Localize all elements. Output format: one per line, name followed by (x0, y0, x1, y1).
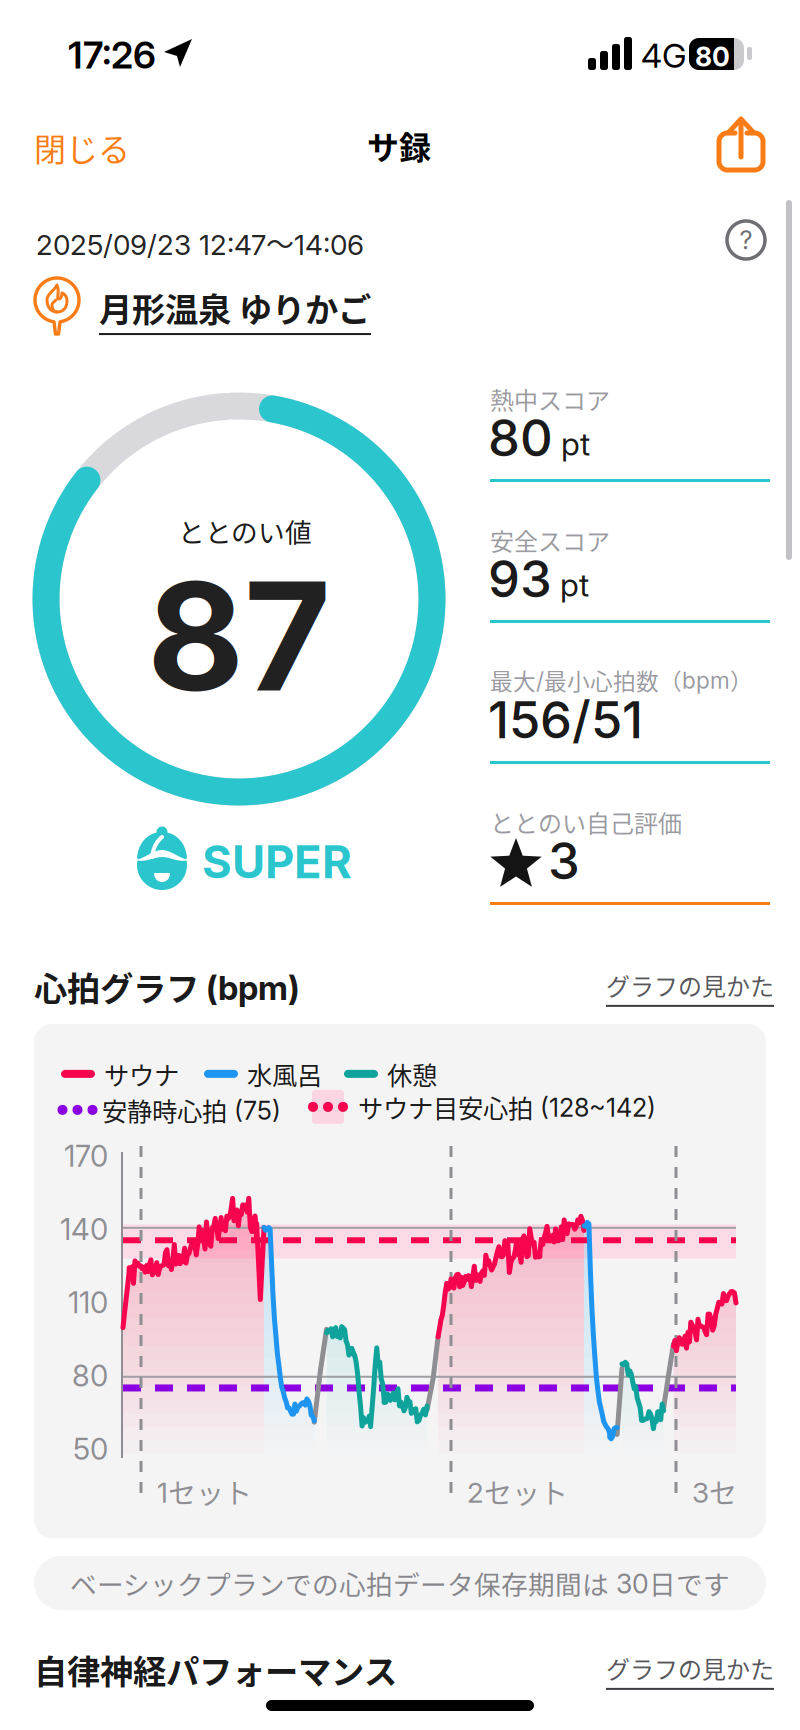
staticText: グラフの見かた (606, 968, 774, 1002)
staticText: グラフの見かた (606, 1651, 774, 1685)
staticText: 3セ (692, 1472, 737, 1511)
staticText: 2セット (467, 1472, 568, 1511)
staticText: 170 (64, 1139, 108, 1173)
staticText: 2025/09/23 12:47〜14:06 (36, 223, 364, 262)
staticText: サウナ (104, 1056, 179, 1092)
staticText: 93 (488, 549, 552, 609)
staticText: 50 (73, 1432, 108, 1466)
staticText: ベーシックプランでの心拍データ保存期間は 30日です (70, 1564, 730, 1602)
staticText: 水風呂 (247, 1056, 322, 1092)
staticText: サウナ目安心拍 (128~142) (358, 1089, 656, 1125)
button[interactable]: 閉じる (0, 111, 164, 184)
button[interactable]: グラフの見かた (606, 968, 774, 1007)
staticText: pt (561, 425, 590, 463)
staticText: 110 (68, 1285, 108, 1320)
staticText: 156/51 (488, 690, 643, 750)
staticText: 月形温泉 ゆりかご (99, 284, 371, 331)
staticText: 安静時心拍 (75) (102, 1092, 281, 1128)
staticText: 4G (641, 36, 687, 75)
staticText: ととのい値 (178, 512, 312, 550)
staticText: 80 (72, 1358, 108, 1393)
staticText: 休憩 (387, 1056, 437, 1092)
staticText: 閉じる (34, 125, 130, 170)
button[interactable]: 月形温泉 ゆりかご (99, 284, 371, 335)
staticText: ととのい自己評価 (490, 805, 682, 839)
button[interactable]: ヘルプ (714, 208, 778, 272)
staticText: 80 (695, 41, 730, 72)
staticText: 自律神経パフォーマンス (34, 1646, 397, 1693)
staticText: 1セット (157, 1472, 252, 1511)
staticText: 140 (60, 1212, 108, 1246)
button[interactable]: グラフの見かた (606, 1651, 774, 1690)
staticText: 17:26 (68, 33, 156, 77)
staticText: 熱中スコア (490, 382, 610, 416)
staticText: 最大/最小心拍数（bpm） (490, 664, 753, 696)
button[interactable]: 施設 (30, 273, 800, 1730)
staticText: ? (739, 225, 752, 255)
staticText: サ録 (367, 123, 431, 168)
staticText: 安全スコア (490, 523, 610, 557)
staticText: 3 (548, 831, 580, 891)
staticText: 心拍グラフ (bpm) (34, 963, 300, 1010)
staticText: SUPER (202, 835, 352, 888)
staticText: pt (560, 566, 589, 604)
button[interactable]: 共有 (709, 107, 800, 1730)
staticText: 87 (147, 548, 331, 724)
staticText: 80 (488, 408, 553, 468)
